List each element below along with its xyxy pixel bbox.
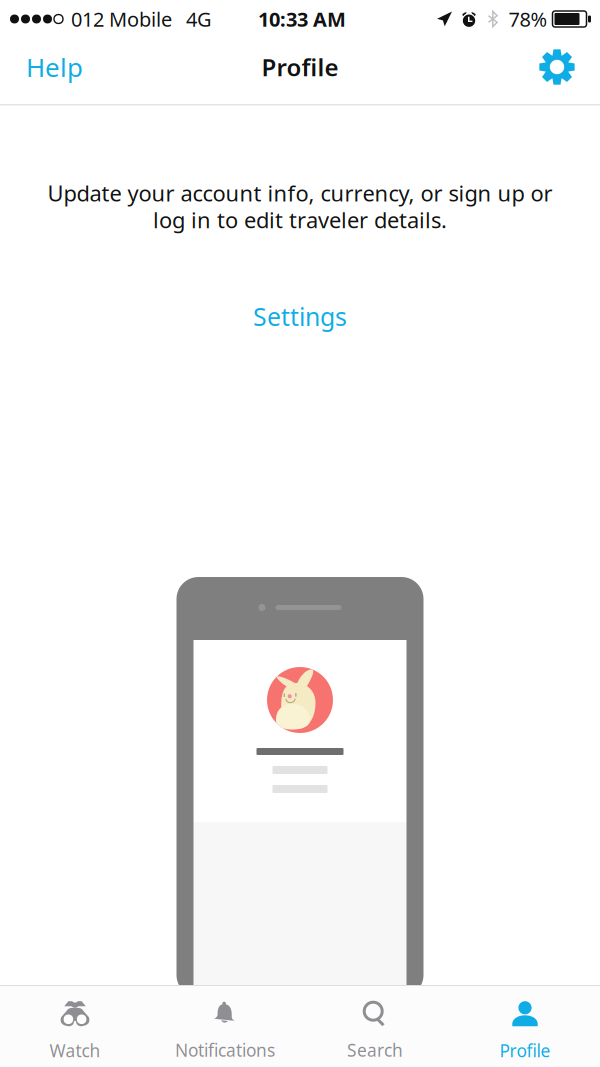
staticText: Search (347, 1038, 403, 1062)
staticText: Profile (499, 1039, 550, 1062)
staticText: Settings (253, 300, 347, 333)
button[interactable]: Watch (0, 990, 150, 1063)
staticText: Watch (49, 1039, 100, 1062)
staticText: 012 Mobile (71, 5, 172, 33)
button[interactable]: Notifications (150, 990, 300, 1063)
staticText: log in to edit traveler details. (153, 205, 447, 235)
button[interactable]: Help (0, 38, 109, 104)
staticText: 10:33 AM (258, 5, 346, 33)
staticText: 4G (186, 5, 212, 33)
staticText: Update your account info, currency, or s… (47, 178, 552, 208)
button[interactable]: Settings (525, 38, 600, 104)
staticText: 78% (508, 5, 547, 33)
staticText: Notifications (175, 1038, 275, 1062)
button[interactable]: Settings (233, 290, 367, 343)
staticText: Help (26, 49, 83, 85)
staticText: Profile (261, 51, 338, 83)
button[interactable]: Search (300, 990, 450, 1063)
button[interactable]: Profile (450, 990, 600, 1063)
